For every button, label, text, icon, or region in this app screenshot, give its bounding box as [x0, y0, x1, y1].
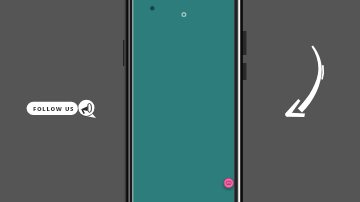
staticText: FOLLOW US: [33, 105, 75, 113]
